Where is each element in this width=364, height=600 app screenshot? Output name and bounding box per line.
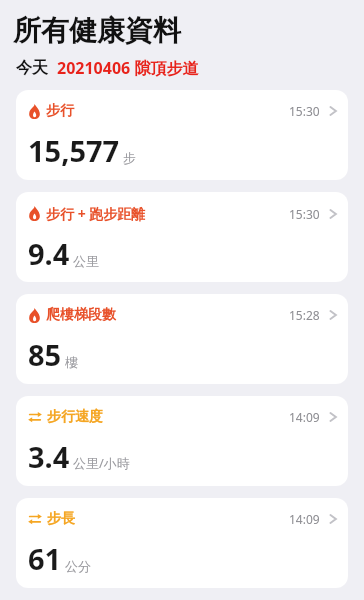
staticText: 15,577: [28, 131, 120, 170]
other: Activity: [28, 104, 41, 119]
staticText: 樓: [65, 354, 78, 370]
button[interactable]: Activity: [16, 192, 348, 282]
staticText: 公分: [65, 558, 91, 574]
staticText: 20210406 隙頂步道: [57, 57, 199, 79]
other: Open details: [329, 308, 337, 322]
staticText: 15:30: [289, 103, 320, 119]
staticText: 61: [28, 539, 62, 578]
staticText: 公里/小時: [73, 454, 130, 472]
other: Walking speed: [28, 410, 42, 424]
staticText: 9.4: [28, 234, 70, 273]
staticText: 步行速度: [47, 408, 103, 426]
staticText: 步: [123, 150, 136, 166]
staticText: 爬樓梯段數: [46, 306, 116, 324]
staticText: 15:28: [289, 307, 320, 323]
button[interactable]: Activity: [16, 294, 348, 384]
staticText: 步長: [47, 510, 75, 528]
button[interactable]: Walking speed: [16, 396, 348, 486]
staticText: 15:30: [289, 206, 320, 222]
staticText: 所有健康資料: [13, 13, 181, 48]
staticText: 步行 + 跑步距離: [46, 204, 146, 223]
button[interactable]: Walking speed: [16, 498, 348, 588]
other: Activity: [28, 206, 41, 221]
staticText: 14:09: [289, 409, 320, 425]
other: Open details: [329, 207, 337, 221]
staticText: 步行: [46, 102, 74, 120]
staticText: 今天: [16, 58, 48, 78]
staticText: 公里: [73, 253, 99, 269]
staticText: 3.4: [28, 437, 70, 476]
staticText: 85: [28, 335, 62, 374]
button[interactable]: Activity: [16, 90, 348, 180]
other: Open details: [329, 512, 337, 526]
staticText: 14:09: [289, 511, 320, 527]
other: Walking speed: [28, 512, 42, 526]
other: Open details: [329, 410, 337, 424]
other: Activity: [28, 308, 41, 323]
other: Open details: [329, 104, 337, 118]
